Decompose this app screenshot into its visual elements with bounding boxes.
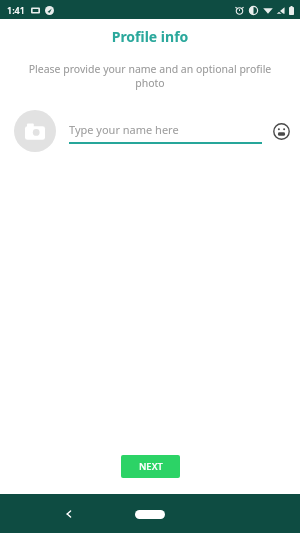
button[interactable]: Back [56, 501, 82, 527]
button[interactable]: NEXT [121, 455, 180, 478]
button[interactable]: Emoji [270, 120, 292, 142]
button[interactable]: Type your name here [69, 119, 262, 139]
staticText: Please provide your name and an optional… [14, 62, 286, 90]
button[interactable]: Add profile photo [14, 110, 56, 152]
staticText: 1:41 [7, 4, 25, 16]
staticText: Profile info [0, 27, 300, 46]
button[interactable]: Home [133, 505, 167, 523]
staticText: NEXT [139, 460, 163, 473]
staticText: Type your name here [69, 122, 179, 137]
